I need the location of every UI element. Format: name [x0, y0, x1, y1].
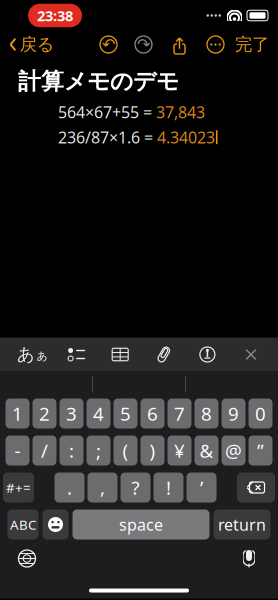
staticText: ↷ — [137, 35, 150, 54]
staticText: ? — [131, 475, 139, 500]
staticText: ( — [122, 438, 128, 463]
staticText: = — [140, 127, 157, 148]
staticText: あ — [17, 344, 35, 365]
button[interactable]: 6 — [140, 398, 164, 428]
staticText: 計算メモのデモ — [18, 67, 179, 95]
button[interactable]: / — [32, 435, 56, 465]
button[interactable]: ! — [153, 472, 183, 502]
staticText: @ — [225, 438, 242, 463]
staticText: 236/87×1.6 — [58, 127, 140, 148]
button[interactable]: . — [54, 472, 84, 502]
button[interactable]: ( — [113, 435, 137, 465]
staticText: 23:38 — [37, 6, 73, 25]
button[interactable]: 0 — [248, 398, 272, 428]
staticText: 5 — [120, 401, 131, 426]
button[interactable]: 削除 — [237, 472, 275, 502]
staticText: ↶ — [102, 35, 115, 54]
button[interactable]: space — [72, 509, 209, 539]
button[interactable]: ABC — [7, 509, 38, 539]
staticText: return — [218, 514, 266, 535]
button[interactable]: : — [59, 435, 83, 465]
staticText: 1 — [12, 401, 23, 426]
staticText: / — [41, 438, 48, 463]
staticText: 0 — [255, 401, 266, 426]
button[interactable]: ) — [140, 435, 164, 465]
staticText: 完了 — [235, 34, 269, 55]
staticText: 4.34023 — [157, 127, 215, 148]
button[interactable]: ; — [86, 435, 110, 465]
button[interactable]: 取り消す — [99, 35, 118, 54]
staticText: & — [199, 438, 213, 463]
button[interactable]: 2 — [32, 398, 56, 428]
button[interactable]: ’ — [186, 472, 216, 502]
staticText: ABC — [10, 516, 36, 533]
staticText: . — [67, 475, 72, 500]
button[interactable]: 閉じる — [234, 339, 268, 369]
button[interactable]: ¥ — [167, 435, 191, 465]
staticText: ぁ — [35, 346, 49, 363]
staticText: = — [139, 101, 156, 122]
staticText: ¥ — [174, 438, 185, 463]
staticText: 4 — [93, 401, 104, 426]
staticText: 9 — [228, 401, 239, 426]
staticText: ; — [96, 438, 101, 463]
button[interactable]: やり直す — [134, 35, 153, 54]
button[interactable]: - — [5, 435, 29, 465]
button[interactable]: #+= — [3, 472, 34, 502]
button[interactable]: 戻る — [0, 28, 55, 61]
staticText: 8 — [201, 401, 212, 426]
button[interactable]: 次のキーボード — [10, 543, 44, 573]
staticText: 564×67+55 — [58, 101, 139, 122]
button[interactable]: @ — [221, 435, 245, 465]
staticText: , — [100, 475, 105, 500]
staticText: ! — [166, 475, 171, 500]
button[interactable]: 絵文字 — [42, 509, 68, 539]
button[interactable]: 完了 — [235, 28, 278, 61]
staticText: ) — [149, 438, 155, 463]
button[interactable]: 音声入力 — [232, 543, 266, 573]
staticText: ” — [257, 438, 264, 463]
staticText: 6 — [147, 401, 158, 426]
button[interactable]: その他 — [206, 35, 225, 54]
staticText: 3 — [66, 401, 77, 426]
staticText: ’ — [200, 475, 203, 500]
staticText: 戻る — [20, 34, 55, 55]
button[interactable]: return — [213, 509, 270, 539]
button[interactable]: 書式 — [16, 339, 50, 369]
button[interactable]: , — [87, 472, 117, 502]
staticText: 2 — [39, 401, 50, 426]
staticText: space — [119, 514, 163, 535]
button[interactable]: 5 — [113, 398, 137, 428]
staticText: : — [69, 438, 74, 463]
button[interactable]: 添付 — [147, 339, 181, 369]
button[interactable]: 表 — [103, 339, 137, 369]
button[interactable]: & — [194, 435, 218, 465]
button[interactable]: マークアップ — [190, 339, 224, 369]
button[interactable]: 9 — [221, 398, 245, 428]
button[interactable]: 8 — [194, 398, 218, 428]
staticText: - — [14, 438, 20, 463]
button[interactable]: ” — [248, 435, 272, 465]
staticText: 37,843 — [156, 101, 205, 122]
button[interactable]: 4 — [86, 398, 110, 428]
button[interactable]: 1 — [5, 398, 29, 428]
button[interactable]: 共有 — [171, 35, 188, 54]
button[interactable]: チェックリスト — [60, 339, 94, 369]
button[interactable]: ? — [120, 472, 150, 502]
button[interactable]: 3 — [59, 398, 83, 428]
staticText: 7 — [174, 401, 185, 426]
staticText: #+= — [6, 479, 31, 496]
button[interactable]: 7 — [167, 398, 191, 428]
